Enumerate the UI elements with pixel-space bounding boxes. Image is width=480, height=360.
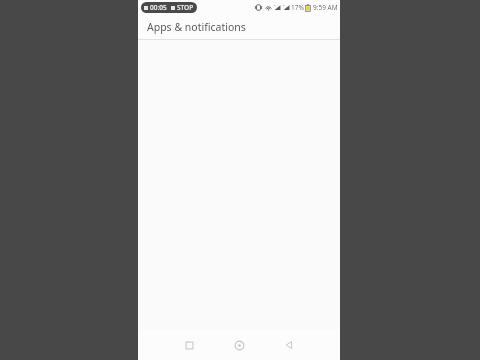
staticText: 9:59 AM bbox=[313, 3, 338, 12]
staticText: 17% bbox=[291, 3, 304, 12]
button[interactable]: Home bbox=[214, 330, 264, 360]
button[interactable]: Recent apps bbox=[164, 330, 214, 360]
staticText: STOP bbox=[177, 3, 194, 12]
staticText: 00:05 bbox=[150, 3, 167, 12]
staticText: Apps & notifications bbox=[147, 20, 246, 34]
button[interactable]: 00:05 bbox=[141, 2, 197, 13]
button[interactable]: Back bbox=[264, 330, 314, 360]
